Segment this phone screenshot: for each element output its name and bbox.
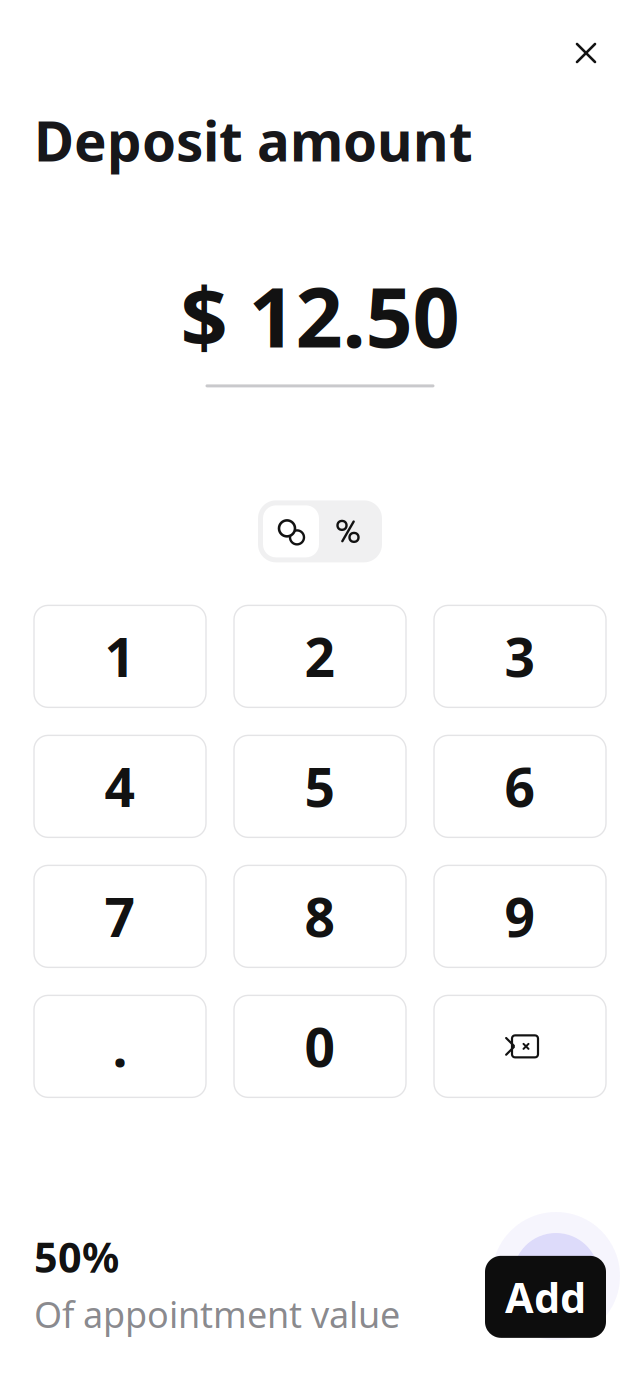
button[interactable]: Delete xyxy=(434,995,606,1097)
staticText: 50% xyxy=(34,1229,119,1284)
button[interactable]: 2 xyxy=(234,605,406,707)
staticText: 4 xyxy=(104,751,135,822)
staticText: 0 xyxy=(304,1011,335,1082)
button[interactable]: 6 xyxy=(434,735,606,837)
button[interactable]: Close xyxy=(562,29,610,77)
button[interactable]: 0 xyxy=(234,995,406,1097)
staticText: 6 xyxy=(504,751,535,822)
button[interactable]: 8 xyxy=(234,865,406,967)
staticText: 2 xyxy=(304,621,335,692)
staticText: $ 12.50 xyxy=(180,261,459,370)
staticText: 9 xyxy=(504,881,535,952)
staticText: Add xyxy=(505,1269,586,1324)
staticText: 7 xyxy=(104,881,135,952)
button[interactable]: 3 xyxy=(434,605,606,707)
staticText: 1 xyxy=(104,621,135,692)
button[interactable]: 7 xyxy=(34,865,206,967)
button[interactable]: Percentage xyxy=(319,505,377,557)
staticText: 5 xyxy=(304,751,335,822)
button[interactable]: 5 xyxy=(234,735,406,837)
button[interactable]: Add xyxy=(485,1256,606,1338)
button[interactable]: 1 xyxy=(34,605,206,707)
staticText: Of appointment value xyxy=(34,1290,400,1338)
button[interactable]: 9 xyxy=(434,865,606,967)
staticText: 3 xyxy=(504,621,535,692)
staticText: Deposit amount xyxy=(34,104,473,177)
button[interactable]: Fixed amount xyxy=(263,505,319,557)
button[interactable]: Decimal point xyxy=(34,995,206,1097)
button[interactable]: 4 xyxy=(34,735,206,837)
staticText: 8 xyxy=(304,881,335,952)
staticText: . xyxy=(112,1011,127,1082)
